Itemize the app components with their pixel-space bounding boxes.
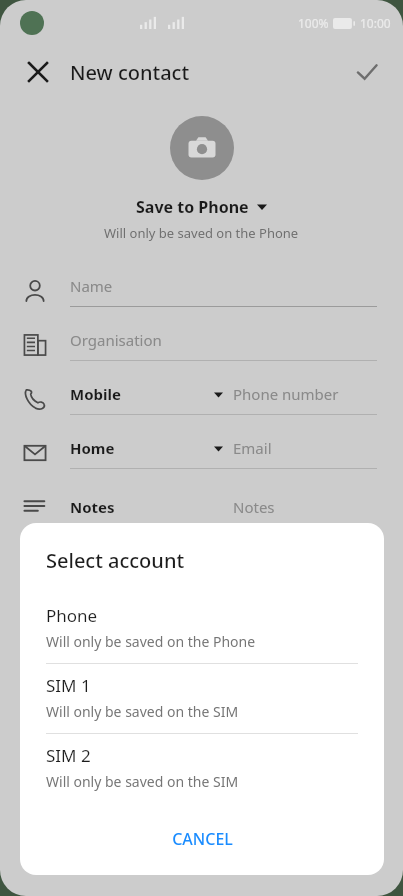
staticText: SIM 2 xyxy=(46,744,91,767)
staticText: Organisation xyxy=(70,330,162,350)
staticText: Will only be saved on the SIM xyxy=(46,772,239,791)
staticText: Email xyxy=(233,438,272,458)
staticText: 100% xyxy=(298,15,329,31)
button[interactable]: Save xyxy=(347,52,387,92)
staticText: SIM 1 xyxy=(46,674,91,697)
staticText: Will only be saved on the Phone xyxy=(104,224,299,242)
staticText: Will only be saved on the SIM xyxy=(46,702,239,721)
button[interactable]: Home xyxy=(0,426,403,480)
button[interactable]: CANCEL xyxy=(20,803,384,875)
staticText: Notes xyxy=(233,497,275,517)
staticText: Name xyxy=(70,276,113,296)
staticText: Save to Phone xyxy=(136,196,249,218)
button[interactable]: Phone xyxy=(20,594,384,663)
staticText: Home xyxy=(70,438,115,458)
staticText: Will only be saved on the Phone xyxy=(46,632,256,651)
button[interactable]: Notes xyxy=(0,480,403,534)
staticText: Phone number xyxy=(233,384,339,404)
staticText: Phone xyxy=(46,604,98,627)
button[interactable]: SIM 1 xyxy=(20,664,384,733)
staticText: Mobile xyxy=(70,384,121,404)
button[interactable]: Close xyxy=(18,52,58,92)
button[interactable]: Add photo xyxy=(170,116,234,180)
button[interactable]: SIM 2 xyxy=(20,734,384,803)
staticText: Select account xyxy=(46,547,185,574)
button[interactable]: Name xyxy=(0,264,403,318)
button[interactable]: Mobile xyxy=(0,372,403,426)
staticText: New contact xyxy=(70,59,190,86)
staticText: Notes xyxy=(70,497,115,517)
button[interactable]: Save to Phone xyxy=(136,196,267,218)
staticText: CANCEL xyxy=(172,828,233,850)
button[interactable]: Organisation xyxy=(0,318,403,372)
staticText: 10:00 xyxy=(360,15,391,31)
